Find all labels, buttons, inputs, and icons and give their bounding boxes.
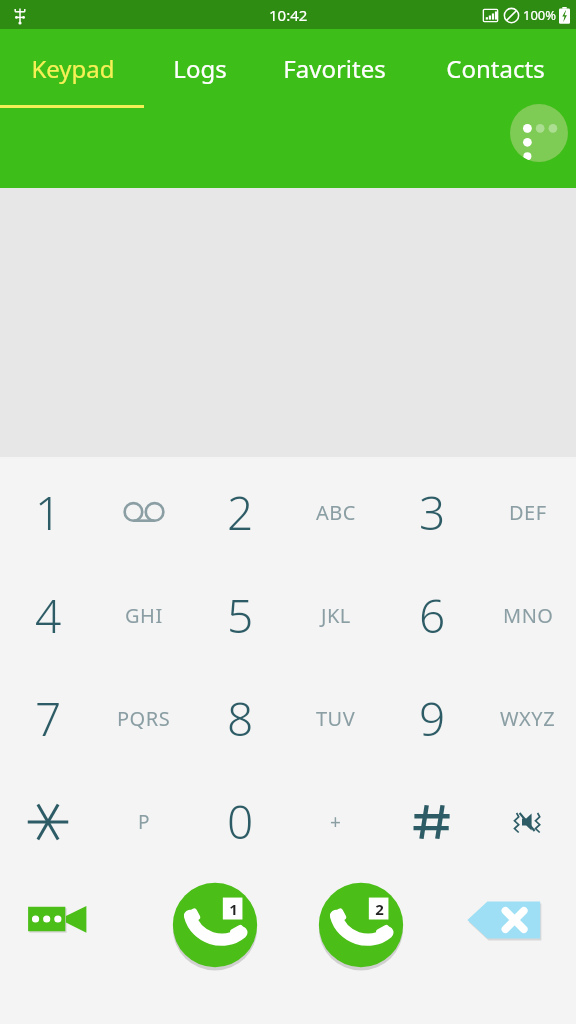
button[interactable]: Keypad [0,29,145,107]
button[interactable]: 3 [384,461,576,564]
staticText: P [138,809,150,835]
staticText: Contacts [446,52,545,85]
staticText: 0 [227,790,254,853]
button[interactable] [384,770,576,873]
button[interactable]: Backspace [462,895,548,945]
button[interactable]: 5 [192,564,384,667]
button[interactable]: Contacts [415,29,576,107]
button[interactable]: Call with SIM 1 [166,876,264,974]
staticText: DEF [509,499,547,526]
staticText: 6 [419,584,446,647]
staticText: WXYZ [500,705,556,732]
staticText: 10:42 [269,5,308,25]
staticText: Keypad [31,52,115,85]
button[interactable]: 7 [0,667,192,770]
button[interactable]: P [0,770,192,873]
staticText: 7 [35,687,62,750]
staticText: 1 [35,481,62,544]
staticText: 4 [35,584,62,647]
staticText: PQRS [117,705,171,732]
staticText: MNO [503,602,554,629]
staticText: TUV [316,705,356,732]
button[interactable]: 2 [192,461,384,564]
button[interactable]: 8 [192,667,384,770]
button[interactable]: More options [510,104,568,162]
staticText: ABC [316,499,356,526]
staticText: Favorites [283,52,386,85]
staticText: 2 [375,899,384,919]
staticText: + [330,809,342,835]
staticText: 8 [227,687,254,750]
button[interactable]: 4 [0,564,192,667]
button[interactable]: Favorites [254,29,415,107]
staticText: 3 [419,481,446,544]
button[interactable]: Call with SIM 2 [312,876,410,974]
button[interactable]: 9 [384,667,576,770]
staticText: JKL [321,602,351,629]
staticText: 100% [523,6,557,24]
staticText: 9 [419,687,446,750]
staticText: 1 [229,899,238,919]
button[interactable]: 1 [0,461,192,564]
button[interactable]: Video call [20,895,92,943]
staticText: 5 [227,584,254,647]
button[interactable]: 6 [384,564,576,667]
staticText: GHI [125,602,163,629]
button[interactable]: 0 [192,770,384,873]
staticText: Logs [173,52,227,85]
staticText: 2 [227,481,254,544]
button[interactable]: Logs [145,29,254,107]
